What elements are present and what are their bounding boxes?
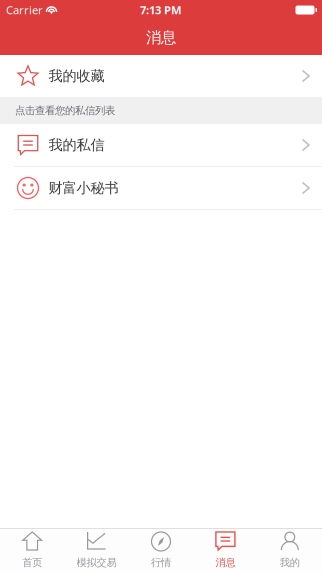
- staticText: 消息: [215, 556, 235, 569]
- button[interactable]: 财富小秘书: [0, 167, 322, 209]
- staticText: 7:13 PM: [140, 2, 182, 18]
- button[interactable]: 消息: [193, 529, 258, 572]
- staticText: 行情: [151, 556, 171, 569]
- staticText: Carrier: [6, 2, 43, 18]
- button[interactable]: 行情: [129, 529, 193, 572]
- staticText: 模拟交易: [77, 556, 117, 569]
- staticText: 消息: [146, 28, 176, 47]
- staticText: 我的收藏: [48, 67, 104, 85]
- staticText: 点击查看您的私信列表: [15, 104, 115, 117]
- staticText: 我的: [280, 556, 300, 569]
- button[interactable]: 我的私信: [0, 124, 322, 166]
- button[interactable]: 我的: [258, 529, 322, 572]
- button[interactable]: 模拟交易: [64, 529, 129, 572]
- staticText: 财富小秘书: [48, 179, 118, 197]
- staticText: 首页: [22, 556, 42, 569]
- button[interactable]: 首页: [0, 529, 64, 572]
- button[interactable]: 我的收藏: [0, 55, 322, 97]
- staticText: 我的私信: [48, 136, 104, 154]
